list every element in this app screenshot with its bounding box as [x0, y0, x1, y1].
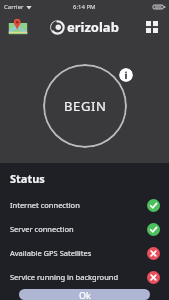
staticText: Service running in background: [10, 272, 147, 282]
button[interactable]: Service running in background: [0, 265, 169, 289]
button[interactable]: Map: [7, 16, 29, 38]
staticText: Server connection: [10, 224, 147, 234]
staticText: Status: [10, 171, 45, 186]
staticText: Ok: [79, 289, 91, 300]
button[interactable]: Server connection: [0, 217, 169, 241]
button[interactable]: Available GPS Satellites: [0, 241, 169, 265]
button[interactable]: BEGIN: [43, 64, 127, 148]
button[interactable]: Information: [119, 68, 133, 82]
staticText: Carrier: [4, 3, 24, 11]
staticText: erizolab: [67, 18, 119, 36]
staticText: 6:14 PM: [73, 3, 96, 11]
button[interactable]: Menu: [143, 18, 161, 36]
button[interactable]: Internet connection: [0, 193, 169, 217]
staticText: Internet connection: [10, 200, 147, 210]
button[interactable]: Ok: [19, 289, 150, 300]
staticText: Available GPS Satellites: [10, 248, 147, 258]
staticText: BEGIN: [64, 97, 107, 115]
